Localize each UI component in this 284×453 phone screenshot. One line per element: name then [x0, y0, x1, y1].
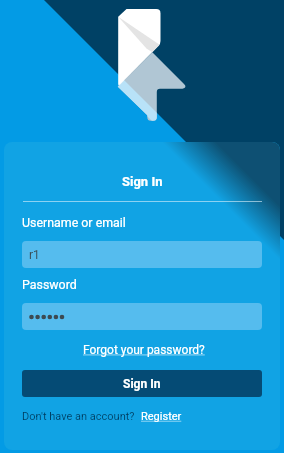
staticText: Sign In [123, 377, 161, 391]
staticText: r1 [29, 248, 40, 262]
staticText: Don't have an account? [22, 410, 135, 423]
button[interactable]: Register [141, 410, 182, 423]
button[interactable]: Forgot your password? [83, 343, 205, 357]
staticText: Sign In [122, 174, 163, 189]
staticText: Password [22, 277, 77, 292]
button[interactable]: Sign In [22, 370, 262, 397]
staticText: Username or email [22, 215, 126, 230]
button[interactable]: r1 [22, 241, 262, 268]
button[interactable]: Password [22, 303, 262, 330]
